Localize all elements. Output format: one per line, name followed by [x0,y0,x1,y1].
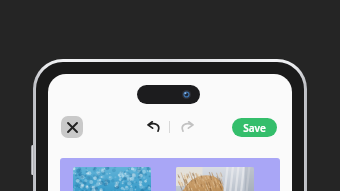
button[interactable]: Redo [176,116,198,138]
button[interactable]: Undo [142,116,164,138]
staticText: Save [243,121,266,135]
button[interactable]: Save [232,118,277,137]
button[interactable]: Close [61,116,83,138]
